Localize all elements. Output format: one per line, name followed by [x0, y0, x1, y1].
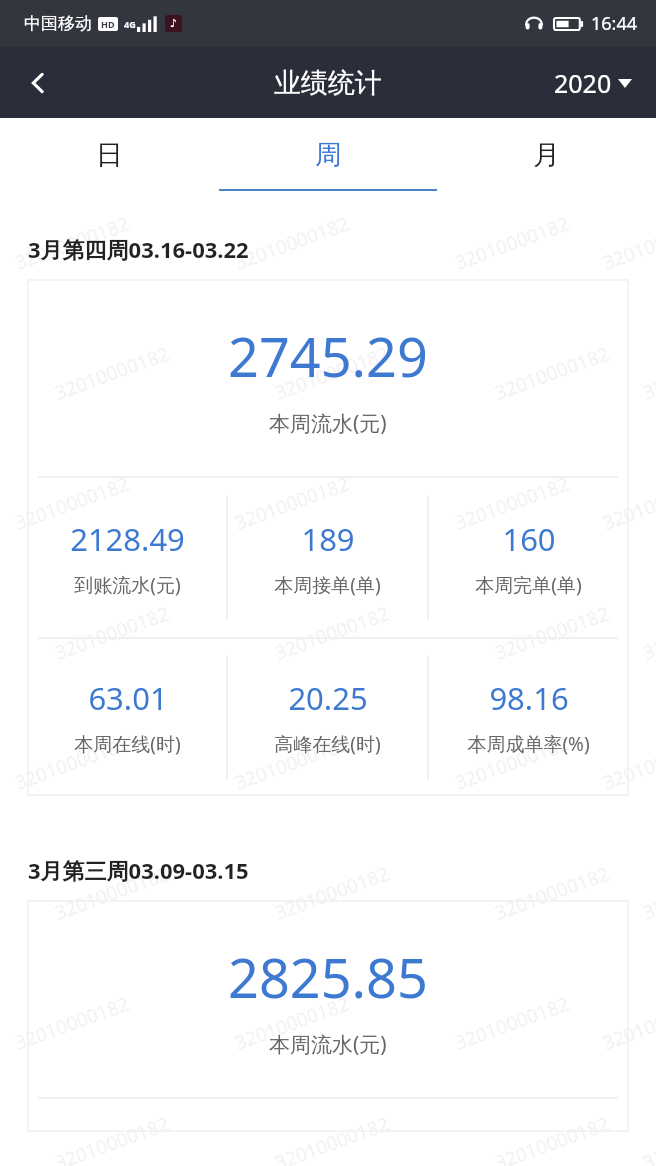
staticText: 20.25: [288, 677, 368, 719]
staticText: 32010000182: [51, 600, 173, 666]
button[interactable]: 2825.85: [28, 901, 628, 1131]
staticText: 32010000182: [271, 340, 393, 406]
staticText: 周: [315, 138, 342, 172]
staticText: 业绩统计: [274, 66, 382, 100]
staticText: 32010000182: [599, 990, 656, 1056]
staticText: 本周流水(元): [269, 409, 387, 438]
staticText: HD: [101, 18, 115, 30]
staticText: 4G: [124, 18, 136, 30]
staticText: 32010000182: [271, 1110, 393, 1166]
staticText: 3月第三周03.09-03.15: [28, 855, 249, 885]
staticText: 32010000182: [11, 470, 133, 536]
staticText: 2825.85: [228, 940, 428, 1014]
staticText: 32010000182: [599, 470, 656, 536]
staticText: 32010000182: [11, 210, 133, 276]
button[interactable]: 63.01: [28, 639, 226, 795]
staticText: 16:44: [591, 11, 638, 36]
staticText: ♪: [170, 17, 178, 30]
staticText: 32010000182: [491, 1110, 613, 1166]
staticText: 32010000182: [451, 730, 573, 796]
button[interactable]: 20.25: [228, 639, 427, 795]
staticText: 32010000182: [599, 730, 656, 796]
button[interactable]: 月: [437, 118, 656, 208]
staticText: 2745.29: [228, 319, 428, 393]
button[interactable]: 98.16: [429, 639, 628, 795]
button[interactable]: Back: [0, 47, 76, 118]
staticText: 32010000182: [271, 860, 393, 926]
staticText: 本周完单(单): [475, 572, 582, 598]
button[interactable]: 2745.29: [28, 280, 628, 795]
staticText: 98.16: [489, 677, 569, 719]
staticText: 32010000182: [491, 600, 613, 666]
button[interactable]: 2128.49: [28, 478, 226, 637]
button[interactable]: 日: [0, 118, 218, 208]
staticText: 日: [96, 138, 123, 172]
staticText: 160: [502, 518, 556, 560]
button[interactable]: 189: [228, 478, 427, 637]
staticText: 2128.49: [70, 518, 185, 560]
staticText: 32010000182: [231, 210, 353, 276]
staticText: 本周接单(单): [274, 572, 381, 598]
button[interactable]: 周: [218, 118, 437, 208]
staticText: 3月第四周03.16-03.22: [28, 234, 249, 264]
staticText: 32010000182: [51, 1110, 173, 1166]
button[interactable]: 2020: [546, 58, 640, 108]
staticText: 2020: [554, 66, 612, 100]
staticText: 中国移动: [24, 13, 92, 34]
staticText: 32010000182: [231, 730, 353, 796]
staticText: 本周成单率(%): [467, 731, 590, 757]
staticText: 32010000182: [491, 860, 613, 926]
staticText: 高峰在线(时): [274, 731, 381, 757]
staticText: 本周在线(时): [74, 731, 181, 757]
staticText: 32010000182: [51, 860, 173, 926]
staticText: 32010000182: [451, 470, 573, 536]
staticText: 32010000182: [271, 600, 393, 666]
staticText: 63.01: [88, 677, 168, 719]
staticText: 32010000182: [11, 990, 133, 1056]
staticText: 32010000182: [231, 990, 353, 1056]
staticText: 32010000182: [231, 470, 353, 536]
staticText: 32010000182: [11, 730, 133, 796]
staticText: 本周流水(元): [269, 1030, 387, 1059]
staticText: 月: [533, 138, 560, 172]
staticText: 189: [301, 518, 355, 560]
staticText: 到账流水(元): [74, 572, 181, 598]
button[interactable]: 160: [429, 478, 628, 637]
